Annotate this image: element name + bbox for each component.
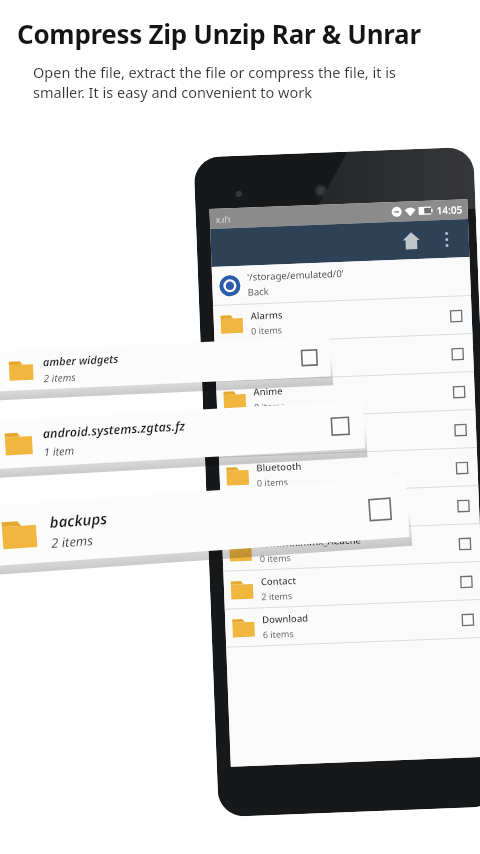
button[interactable]: Select Backups [447, 416, 474, 443]
button[interactable]: Select backups [359, 489, 400, 529]
button[interactable]: com.facebook.orca [220, 486, 480, 533]
button[interactable]: '/storage/emulated/0' [212, 257, 471, 305]
button[interactable]: Select amber widgets [295, 344, 323, 372]
staticText: 1 item [43, 443, 75, 459]
button[interactable]: Select android.systems.zgtas.fz [324, 410, 357, 443]
staticText: Contact [260, 574, 297, 588]
button[interactable]: Android [215, 334, 474, 381]
button[interactable]: Download [225, 600, 480, 647]
staticText: x.ıl'ı [216, 213, 231, 225]
button[interactable]: Select com.facebook.orca [449, 492, 476, 519]
staticText: com.wifi.mmx_ACache [259, 533, 361, 550]
button[interactable]: Contact [223, 562, 480, 609]
staticText: Compress Zip Unzip Rar & Unrar [17, 16, 421, 51]
staticText: 2 items [261, 589, 292, 602]
button[interactable]: Select Android [444, 340, 471, 367]
staticText: 0 items [257, 475, 288, 488]
button[interactable]: android.systems.zgtas.fz [0, 400, 365, 469]
button[interactable]: Home [395, 225, 426, 256]
staticText: Open the file, extract the file or compr… [33, 62, 396, 102]
button[interactable]: More options [433, 225, 460, 252]
staticText: 2 items [50, 531, 94, 552]
button[interactable]: Select Download [454, 606, 480, 633]
staticText: 0 items [254, 399, 285, 412]
staticText: Back [247, 285, 270, 299]
staticText: Download [262, 612, 308, 626]
staticText: android.systems.zgtas.fz [42, 417, 186, 442]
staticText: 2 items [43, 370, 77, 385]
staticText: Anime [253, 384, 284, 398]
button[interactable]: Anime [216, 372, 475, 419]
button[interactable]: backups [0, 477, 409, 567]
button[interactable]: Select Contact [452, 568, 479, 595]
staticText: amber widgets [42, 351, 119, 369]
staticText: Bluetooth [256, 460, 303, 474]
button[interactable]: Backups [217, 410, 477, 457]
button[interactable]: com.wifi.mmx_ACache [222, 524, 480, 571]
button[interactable]: Select Anime [445, 378, 472, 405]
staticText: '/storage/emulated/0' [247, 267, 344, 284]
button[interactable]: Bluetooth [219, 448, 478, 495]
button[interactable]: Select Alarms [442, 302, 469, 329]
staticText: 6 items [263, 627, 294, 640]
staticText: Alarms [250, 308, 283, 322]
button[interactable]: Select Bluetooth [448, 454, 475, 481]
button[interactable]: amber widgets [0, 336, 331, 392]
staticText: 14:05 [436, 202, 463, 217]
staticText: backups [49, 508, 108, 532]
staticText: 0 items [251, 323, 282, 336]
button[interactable]: Alarms [213, 296, 472, 343]
staticText: 0 items [260, 551, 291, 564]
button[interactable]: Select com.wifi.mmx_ACache [451, 530, 478, 557]
